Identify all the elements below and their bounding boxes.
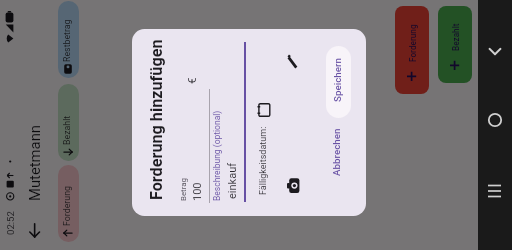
button[interactable]: Edit — [287, 54, 297, 69]
button[interactable]: Forderung — [58, 165, 79, 242]
staticText: Forderung — [62, 186, 72, 226]
button[interactable]: Add photo — [287, 178, 299, 193]
staticText: 100 — [191, 182, 204, 201]
staticText: Fälligkeitsdatum: — [258, 126, 269, 195]
button[interactable]: Back — [483, 37, 507, 57]
button[interactable]: Recent apps — [483, 172, 507, 198]
button[interactable]: Home — [484, 112, 506, 128]
staticText: Bezahlt — [62, 115, 72, 145]
button[interactable] — [326, 126, 351, 182]
staticText: € — [185, 77, 199, 84]
staticText: Forderung — [408, 24, 418, 62]
button[interactable]: Pick due date — [257, 103, 271, 117]
staticText: Beschreibung (optional) — [212, 110, 222, 201]
staticText: Restbetrag — [62, 19, 72, 62]
button[interactable] — [326, 46, 351, 118]
button[interactable]: Bezahlt — [438, 6, 472, 83]
button[interactable]: Forderung — [395, 6, 429, 94]
staticText: Forderung hinzufügen — [147, 39, 166, 200]
button[interactable]: Bezahlt — [58, 84, 79, 161]
button[interactable]: Restbetrag — [58, 1, 79, 78]
button[interactable]: Back — [20, 212, 49, 242]
staticText: Bezahlt — [451, 23, 461, 51]
staticText: Abbrechen — [331, 128, 342, 176]
staticText: Mutetmann — [26, 125, 43, 201]
staticText: Speichern — [332, 58, 343, 102]
staticText: Betrag — [179, 178, 188, 201]
staticText: 02:52 — [5, 211, 16, 235]
staticText: einkauf — [226, 162, 239, 199]
